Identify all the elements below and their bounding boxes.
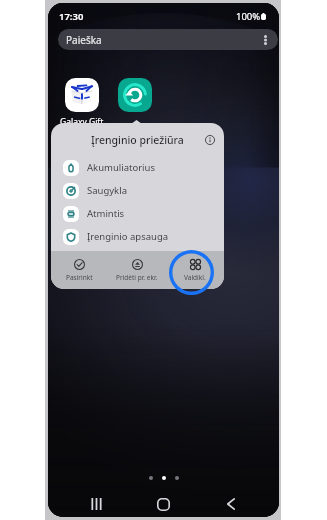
button[interactable]: Back	[197, 492, 264, 516]
staticText: Galaxy Gift	[60, 116, 104, 128]
button[interactable]: Device care	[118, 78, 152, 112]
button[interactable]: Akumuliatorius	[51, 156, 224, 179]
other: More options	[264, 35, 267, 45]
staticText: Valdikl.	[184, 273, 206, 282]
staticText: Įrenginio apsauga	[87, 230, 169, 243]
button[interactable]: Atmintis	[51, 202, 224, 225]
button[interactable]: Saugykla	[51, 179, 224, 202]
staticText: Pridėti pr. ekr.	[116, 273, 158, 282]
button[interactable]: Įrenginio apsauga	[51, 225, 224, 248]
button[interactable]: Recents	[63, 492, 130, 516]
staticText: Atmintis	[87, 207, 125, 220]
staticText: Pasirinkt	[66, 273, 93, 282]
staticText: Įrenginio priežiūra	[91, 133, 184, 147]
button[interactable]: Pasirinkt	[51, 251, 108, 289]
button[interactable]: Home	[130, 492, 197, 516]
button[interactable]: Pridėti pr. ekr.	[108, 251, 166, 289]
button[interactable]: Galaxy Gift	[65, 78, 99, 112]
staticText: Paieška	[66, 33, 102, 47]
button[interactable]: Valdikl.	[166, 251, 224, 289]
staticText: 100%	[236, 10, 261, 23]
staticText: Akumuliatorius	[87, 161, 155, 174]
staticText: Saugykla	[87, 184, 127, 197]
staticText: 17:30	[59, 10, 84, 23]
other: Information	[205, 135, 215, 145]
button[interactable]: Paieška	[58, 29, 278, 50]
